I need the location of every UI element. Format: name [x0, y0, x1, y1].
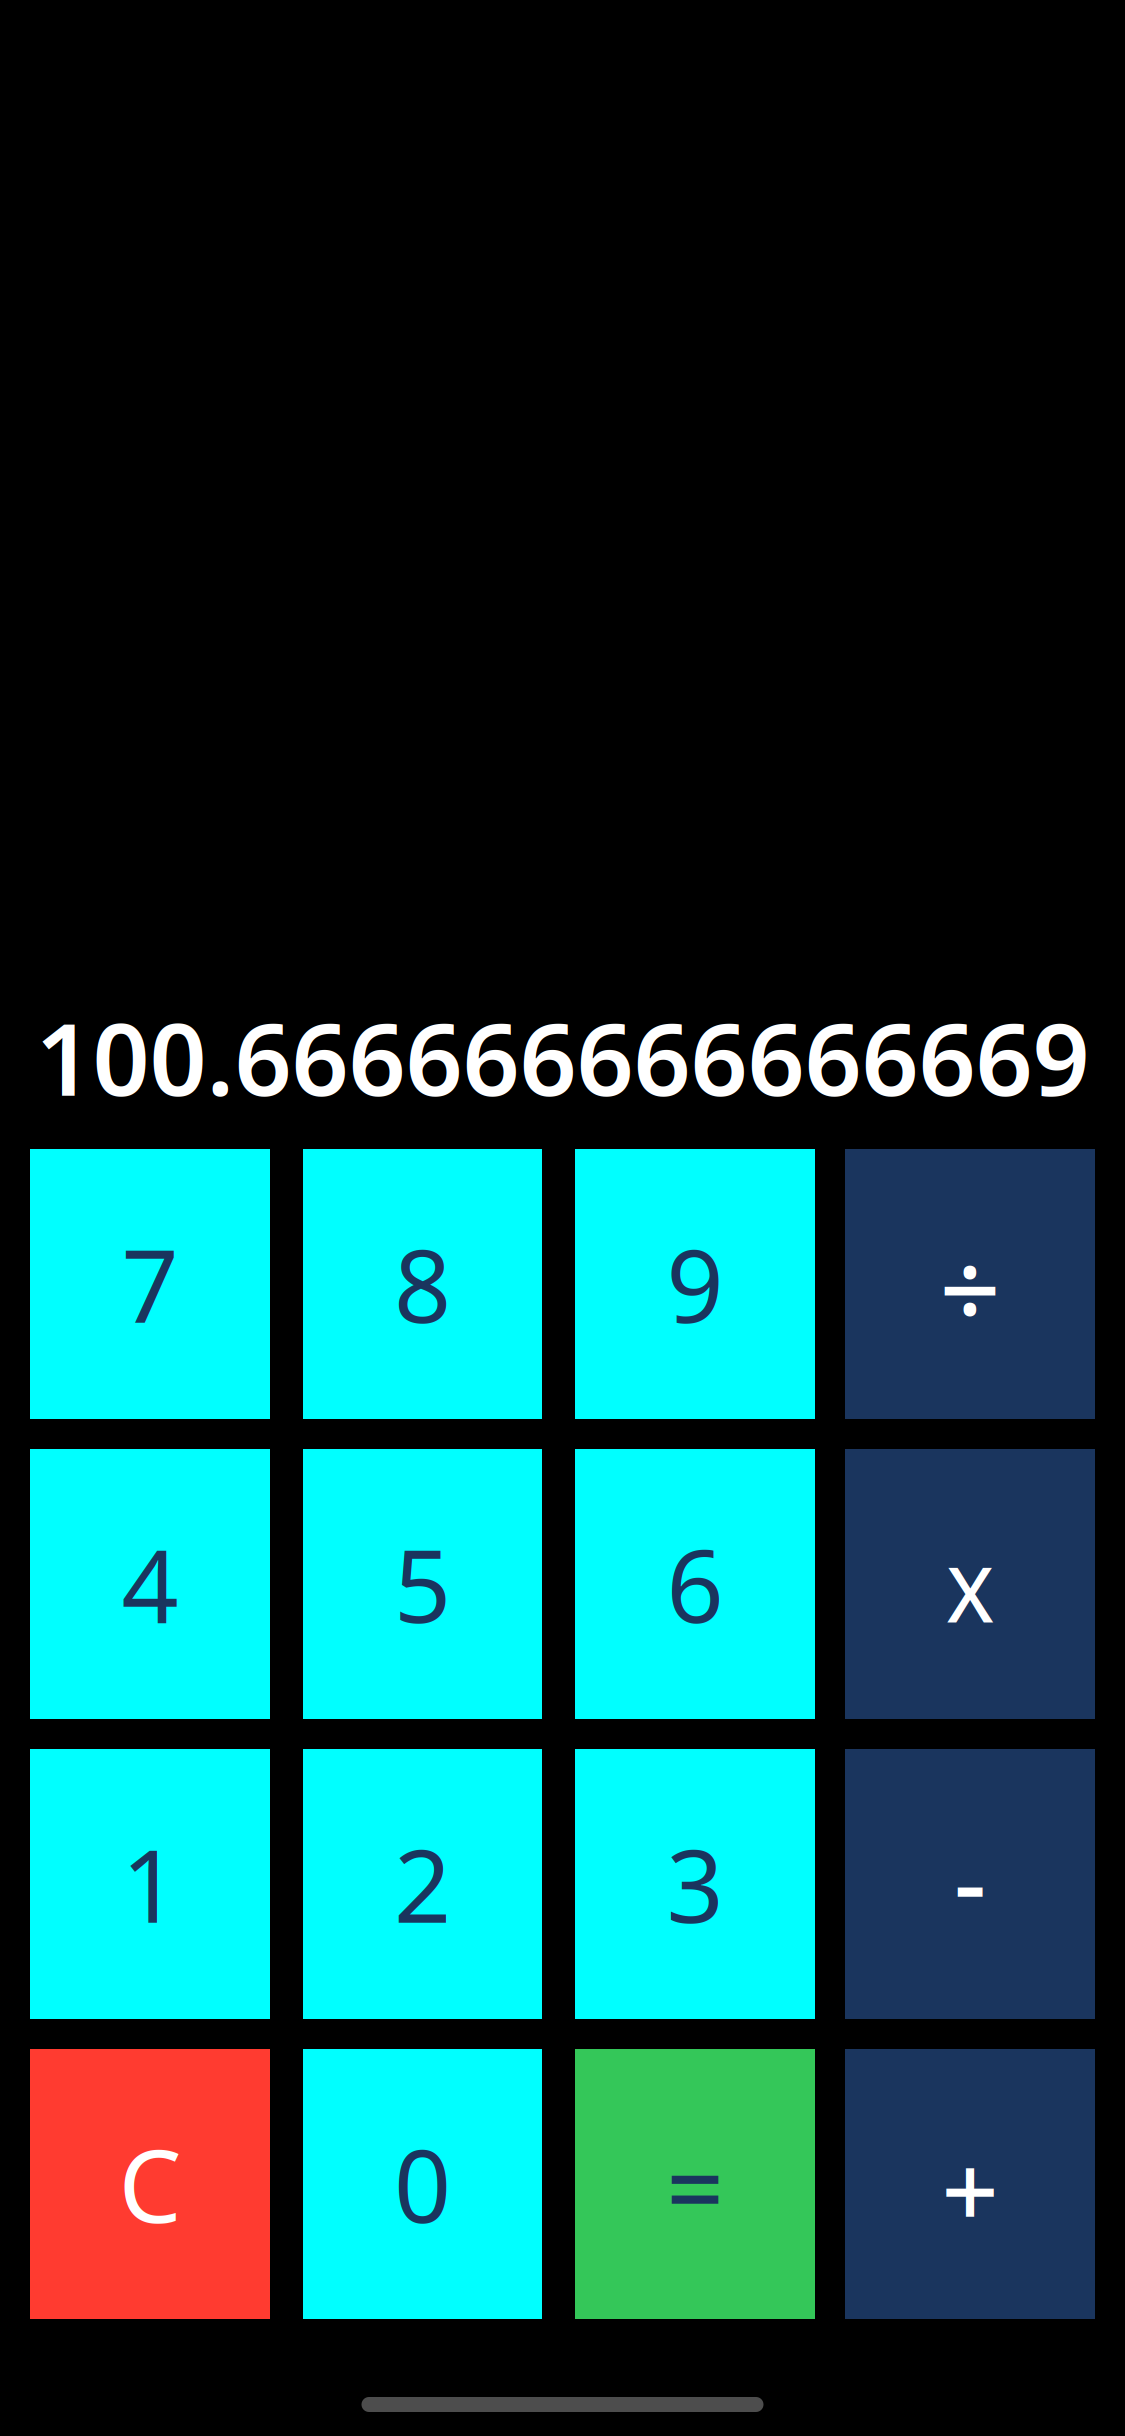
button[interactable]: 7: [30, 1149, 270, 1419]
button[interactable]: X: [845, 1449, 1095, 1719]
staticText: 3: [666, 1818, 723, 1950]
button[interactable]: -: [845, 1749, 1095, 2019]
button[interactable]: ÷: [845, 1149, 1095, 1419]
staticText: -: [954, 1814, 986, 1946]
staticText: =: [666, 2120, 723, 2252]
button[interactable]: =: [575, 2049, 815, 2319]
staticText: 9: [666, 1218, 723, 1350]
staticText: 100.666666666666669: [35, 991, 1089, 1123]
staticText: 1: [121, 1818, 178, 1950]
staticText: +: [941, 2123, 998, 2255]
button[interactable]: 4: [30, 1449, 270, 1719]
button[interactable]: 5: [303, 1449, 542, 1719]
button[interactable]: 9: [575, 1149, 815, 1419]
button[interactable]: 8: [303, 1149, 542, 1419]
staticText: 5: [394, 1518, 451, 1650]
button[interactable]: 1: [30, 1749, 270, 2019]
staticText: 7: [121, 1218, 178, 1350]
button[interactable]: 0: [303, 2049, 542, 2319]
button[interactable]: 2: [303, 1749, 542, 2019]
button[interactable]: 6: [575, 1449, 815, 1719]
staticText: X: [947, 1542, 993, 1643]
button[interactable]: C: [30, 2049, 270, 2319]
staticText: 0: [394, 2118, 451, 2250]
staticText: C: [118, 2118, 181, 2250]
staticText: ÷: [939, 1217, 1000, 1359]
staticText: 8: [394, 1218, 451, 1350]
button[interactable]: 3: [575, 1749, 815, 2019]
staticText: 6: [666, 1518, 723, 1650]
staticText: 4: [121, 1518, 178, 1650]
staticText: 2: [394, 1818, 451, 1950]
button[interactable]: +: [845, 2049, 1095, 2319]
